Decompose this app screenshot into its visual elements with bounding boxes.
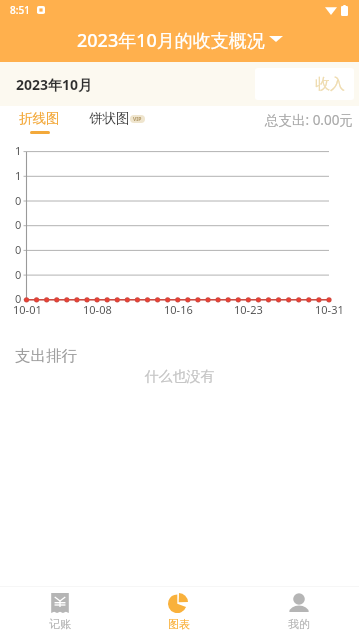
button[interactable]: 饼状图 bbox=[89, 110, 145, 127]
staticText: 总支出: 0.00元 bbox=[265, 111, 353, 129]
staticText: 图表 bbox=[168, 617, 190, 631]
staticText: 10-23 bbox=[234, 302, 263, 317]
staticText: 记账 bbox=[49, 617, 71, 631]
button[interactable]: 收入 bbox=[255, 68, 354, 100]
button[interactable]: 我的 bbox=[239, 589, 359, 637]
button[interactable]: 图表 bbox=[119, 589, 239, 637]
staticText: 10-31 bbox=[315, 302, 344, 317]
staticText: VIP bbox=[133, 116, 142, 123]
staticText: 0 bbox=[15, 291, 22, 306]
staticText: 10-01 bbox=[13, 302, 42, 317]
staticText: 0 bbox=[15, 217, 22, 232]
staticText: 0 bbox=[15, 193, 22, 208]
staticText: 0 bbox=[15, 267, 22, 282]
staticText: 什么也没有 bbox=[0, 368, 359, 386]
staticText: 收入 bbox=[315, 75, 345, 94]
button[interactable]: 2023年10月的收支概况 bbox=[77, 28, 283, 53]
staticText: 1 bbox=[15, 143, 22, 158]
staticText: 支出排行 bbox=[15, 346, 77, 366]
staticText: 10-08 bbox=[83, 302, 112, 317]
staticText: 8:51 bbox=[10, 3, 30, 17]
staticText: 0 bbox=[15, 242, 22, 257]
staticText: 折线图 bbox=[19, 110, 60, 127]
staticText: 我的 bbox=[288, 617, 310, 631]
staticText: 2023年10月 bbox=[16, 75, 93, 94]
staticText: 饼状图 bbox=[89, 110, 130, 127]
button[interactable]: 折线图 bbox=[19, 110, 60, 127]
staticText: 2023年10月的收支概况 bbox=[77, 28, 265, 53]
button[interactable]: 记账 bbox=[0, 589, 119, 637]
staticText: 1 bbox=[15, 168, 22, 183]
staticText: 10-16 bbox=[164, 302, 193, 317]
